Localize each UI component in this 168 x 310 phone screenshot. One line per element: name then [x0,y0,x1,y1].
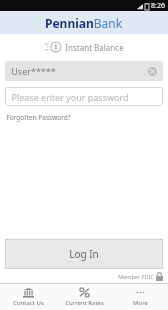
button[interactable]: Please enter your password [5,87,163,106]
staticText: PennianBank [45,15,123,31]
button[interactable]: Log In [5,239,163,269]
button[interactable]: Contact Us [0,284,56,310]
button[interactable]: User***** [5,61,163,81]
staticText: Instant Balance [65,42,124,53]
button[interactable]: Forgotten Password? [6,112,71,123]
staticText: 8:26 [151,1,165,11]
button[interactable]: Instant Balance [0,38,168,56]
staticText: Log In [69,247,99,261]
staticText: Current Rates [65,299,104,307]
staticText: More [133,299,148,307]
staticText: Please enter your password [11,91,129,103]
button[interactable]: More [112,284,168,310]
button[interactable]: Current Rates [56,284,112,310]
staticText: Forgotten Password? [6,113,71,122]
staticText: User***** [11,65,56,77]
button[interactable]: Clear username [148,67,157,76]
staticText: Contact Us [13,299,44,307]
staticText: Member FDIC [118,273,154,280]
